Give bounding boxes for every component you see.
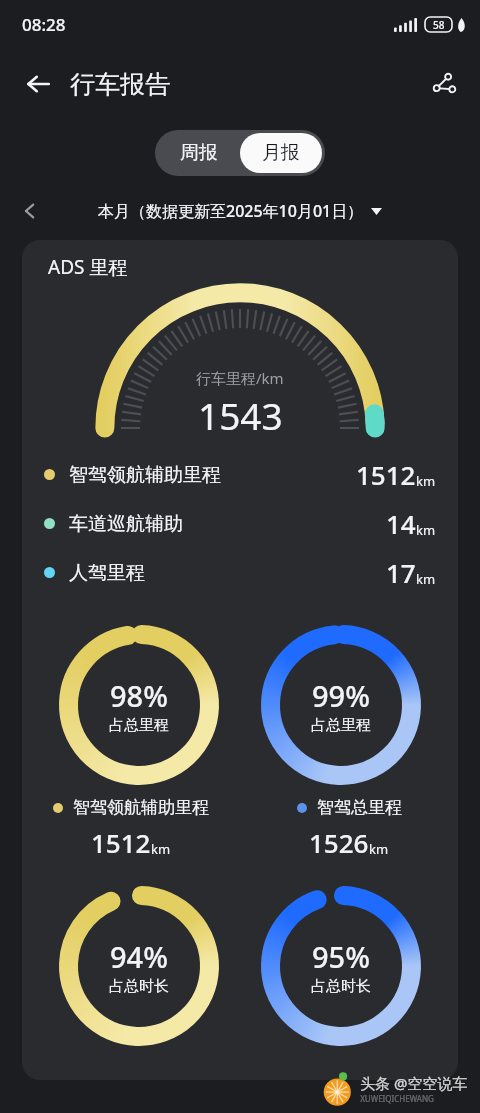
staticText: 1526 [309, 825, 369, 860]
staticText: ADS 里程 [48, 254, 128, 280]
staticText: km [416, 472, 436, 490]
button[interactable]: 周报 [158, 133, 240, 173]
staticText: 占总里程 [109, 716, 169, 735]
staticText: 行车报告 [70, 69, 170, 100]
staticText: 头条 @空空说车 [360, 1073, 468, 1093]
staticText: 58 [433, 18, 445, 32]
staticText: km [151, 840, 171, 858]
staticText: 1512 [91, 825, 151, 860]
staticText: km [416, 521, 436, 539]
staticText: 1543 [198, 390, 283, 436]
staticText: 14 [386, 506, 416, 541]
staticText: 17 [386, 555, 416, 590]
button[interactable]: 智驾总里程 [240, 797, 458, 860]
staticText: 人驾里程 [69, 561, 145, 585]
button[interactable]: 月报 [240, 133, 322, 173]
staticText: 98% [110, 676, 168, 715]
staticText: XUWEIQICHEWANG [360, 1093, 434, 1104]
staticText: 周报 [180, 141, 218, 165]
staticText: km [369, 840, 389, 858]
staticText: 08:28 [22, 13, 66, 36]
button[interactable]: Back [14, 60, 62, 108]
button[interactable]: 94% [55, 882, 223, 1050]
staticText: 95% [312, 937, 370, 976]
button[interactable]: 智驾领航辅助里程 [22, 797, 240, 860]
staticText: 94% [110, 937, 168, 976]
button[interactable]: 95% [257, 882, 425, 1050]
staticText: 本月（数据更新至2025年10月01日） [98, 200, 364, 222]
button[interactable]: 车道巡航辅助 [22, 499, 458, 548]
staticText: 车道巡航辅助 [69, 512, 183, 536]
staticText: 占总时长 [109, 977, 169, 996]
button[interactable]: 智驾领航辅助里程 [22, 450, 458, 499]
button[interactable]: 本月（数据更新至2025年10月01日） [98, 200, 382, 222]
staticText: 智驾领航辅助里程 [73, 797, 209, 818]
staticText: 智驾领航辅助里程 [69, 463, 221, 487]
staticText: 占总里程 [311, 716, 371, 735]
staticText: km [416, 570, 436, 588]
staticText: 占总时长 [311, 977, 371, 996]
staticText: 1512 [356, 457, 416, 492]
button[interactable]: 98% [55, 621, 223, 789]
staticText: 月报 [262, 141, 300, 165]
staticText: 99% [312, 676, 370, 715]
staticText: 智驾总里程 [317, 797, 402, 818]
button[interactable]: Share [420, 60, 468, 108]
button[interactable]: Previous period [14, 196, 46, 226]
staticText: 行车里程/km [196, 368, 284, 388]
button[interactable]: 99% [257, 621, 425, 789]
button[interactable]: 人驾里程 [22, 548, 458, 597]
